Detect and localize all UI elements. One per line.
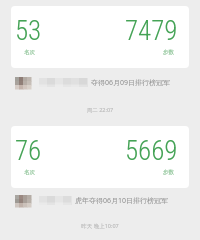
staticText: 夺得06月09日排行榜冠军 [91, 78, 171, 88]
staticText: 昨天 晚上10:07 [0, 222, 200, 230]
button[interactable]: Contact avatar [15, 194, 189, 207]
staticText: 名次 [24, 49, 35, 56]
other: Contact avatar [15, 77, 31, 89]
staticText: 53 [15, 15, 42, 47]
staticText: 步数 [163, 49, 174, 56]
button[interactable]: Contact avatar [15, 76, 189, 89]
button[interactable]: 53 [11, 6, 189, 68]
staticText: 76 [15, 135, 42, 167]
staticText: 名次 [24, 169, 35, 176]
staticText: 步数 [163, 169, 174, 176]
staticText: 虎年夺得06月10日排行榜冠军 [75, 196, 169, 206]
button[interactable]: 76 [11, 126, 189, 188]
staticText: 周二 22:07 [0, 106, 200, 114]
other: Contact avatar [15, 195, 31, 207]
staticText: 7479 [125, 15, 178, 47]
staticText: 5669 [125, 135, 178, 167]
